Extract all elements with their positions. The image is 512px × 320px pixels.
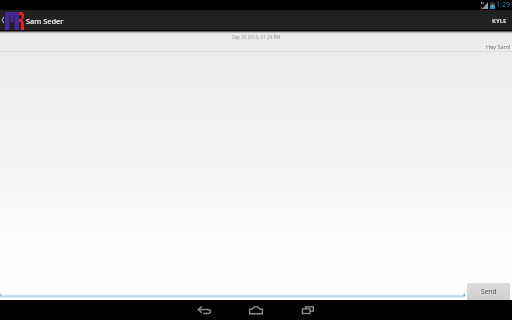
button[interactable]: Back (178, 300, 230, 320)
staticText: KYLE (492, 17, 507, 25)
button[interactable]: Recent apps (282, 300, 334, 320)
button[interactable]: Message (0, 279, 467, 300)
staticText: Hey Sam! (486, 43, 511, 51)
button[interactable]: KYLE (486, 10, 512, 30)
button[interactable]: Home (230, 300, 282, 320)
staticText: Sep 25 2013, 01:29 PM (232, 34, 281, 40)
staticText: 1:29 (496, 0, 510, 10)
staticText: Send (481, 287, 497, 296)
button[interactable]: Up (0, 10, 24, 30)
button[interactable]: Send (467, 283, 510, 300)
staticText: Sam Seder (26, 16, 64, 26)
button[interactable]: Hey Sam! (0, 42, 512, 51)
